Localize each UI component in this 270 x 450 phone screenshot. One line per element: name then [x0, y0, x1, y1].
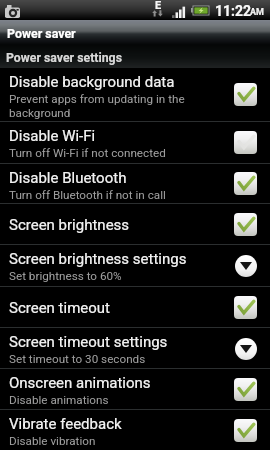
staticText: Power saver settings	[6, 51, 122, 65]
other: Enabled	[234, 213, 257, 236]
staticText: Disable Wi-Fi	[9, 127, 96, 145]
staticText: Power saver	[7, 26, 76, 41]
button[interactable]: Disable background data	[0, 68, 270, 121]
button[interactable]: Screen timeout settings	[0, 328, 270, 368]
button[interactable]: Vibrate feedback	[0, 410, 270, 450]
staticText: Turn off Wi-Fi if not connected	[9, 146, 166, 160]
other: Enabled	[234, 83, 257, 106]
staticText: Set timeout to 30 seconds	[9, 352, 146, 366]
other: Screenshot captured	[0, 0, 22, 20]
other: Enabled	[234, 172, 257, 195]
staticText: AM	[250, 7, 264, 18]
staticText: Vibrate feedback	[9, 415, 122, 433]
staticText: Screen brightness	[9, 216, 130, 234]
button[interactable]: Screen brightness settings	[0, 245, 270, 286]
staticText: E	[155, 0, 162, 12]
button[interactable]: Disable Bluetooth	[0, 164, 270, 203]
staticText: Disable vibration	[9, 434, 96, 448]
staticText: Onscreen animations	[9, 374, 151, 392]
staticText: 11:22	[215, 3, 252, 19]
staticText: Set brightness to 60%	[9, 269, 122, 283]
staticText: Prevent apps from updating in the backgr…	[9, 92, 228, 120]
staticText: Disable animations	[9, 393, 109, 407]
button[interactable]: Onscreen animations	[0, 369, 270, 409]
other: Open options	[234, 254, 257, 277]
staticText: Turn off Bluetooth if not in call	[9, 188, 166, 202]
staticText: Screen timeout settings	[9, 333, 168, 351]
other: Enabled	[234, 296, 257, 319]
other: Enabled	[234, 378, 257, 401]
other: Disabled	[234, 131, 257, 154]
staticText: Disable Bluetooth	[9, 169, 127, 187]
other: Open options	[234, 337, 257, 360]
other: Enabled	[234, 419, 257, 442]
staticText: Screen brightness settings	[9, 250, 187, 268]
staticText: Disable background data	[9, 73, 175, 91]
button[interactable]: Screen brightness	[0, 204, 270, 244]
button[interactable]: Disable Wi-Fi	[0, 122, 270, 163]
button[interactable]: Screen timeout	[0, 287, 270, 327]
staticText: Screen timeout	[9, 299, 111, 317]
